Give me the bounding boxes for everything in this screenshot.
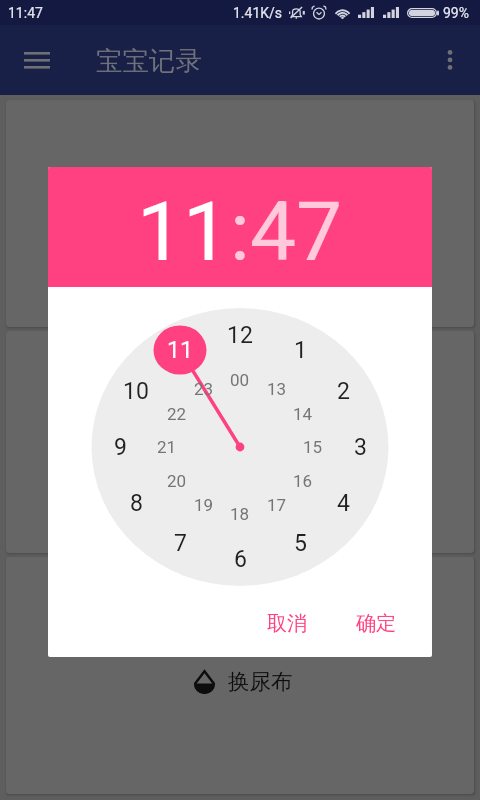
staticText: 20 [167,471,187,491]
staticText: : [230,184,250,280]
staticText: 宝宝记录 [96,44,202,77]
staticText: 10 [123,378,149,405]
staticText: 11 [167,337,193,364]
staticText: 9 [114,434,127,461]
button[interactable]: 确定 [346,603,406,644]
staticText: 23 [194,379,214,399]
staticText: 12 [227,322,253,349]
staticText: 16 [293,471,313,491]
staticText: 17 [267,495,287,515]
button[interactable]: 取消 [257,603,317,644]
staticText: 15 [303,437,323,457]
staticText: 8 [130,490,143,517]
staticText: 13 [267,379,287,399]
button[interactable] [6,100,474,327]
staticText: 确定 [356,611,396,636]
button[interactable]: 47 [250,184,343,280]
button[interactable]: More options [428,38,472,82]
button[interactable]: 换尿布 [6,557,474,794]
staticText: 4 [337,490,350,517]
staticText: 22 [167,404,187,424]
staticText: 00 [230,370,250,390]
button[interactable] [6,331,474,553]
staticText: 21 [157,437,177,457]
staticText: 11:47 [8,5,43,21]
staticText: 7 [174,530,187,557]
staticText: 19 [194,495,214,515]
staticText: 6 [234,546,247,573]
staticText: 2 [337,378,350,405]
staticText: 99% [443,5,469,21]
button[interactable]: 11 [137,184,230,280]
staticText: 3 [354,434,367,461]
staticText: 1.41K/s [233,5,283,21]
staticText: 14 [293,404,313,424]
staticText: 18 [230,504,250,524]
button[interactable]: Menu [12,35,62,85]
staticText: 1 [294,337,307,364]
staticText: 取消 [267,611,307,636]
staticText: 换尿布 [228,668,293,695]
staticText: 5 [294,530,307,557]
